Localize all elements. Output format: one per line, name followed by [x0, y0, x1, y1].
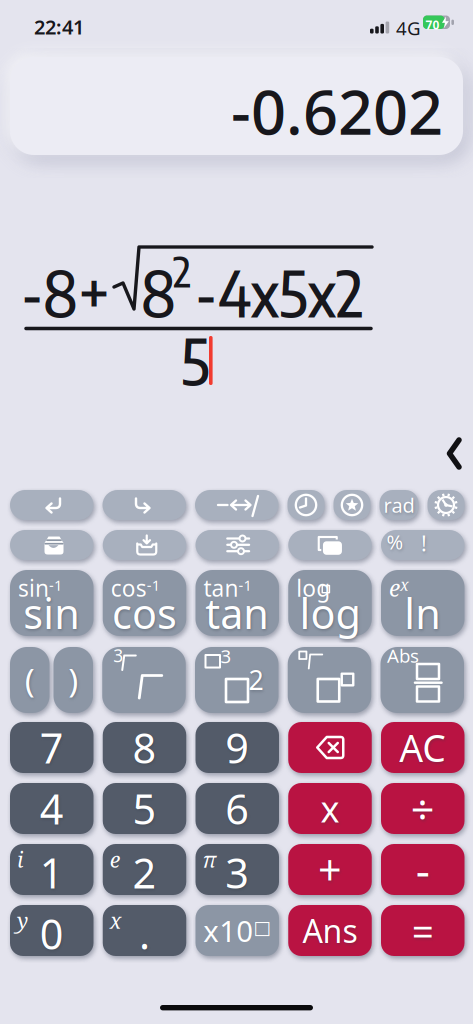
button[interactable]: ÷ [381, 783, 464, 834]
button[interactable] [288, 722, 372, 773]
button[interactable]: AC [381, 722, 464, 773]
staticText: + [318, 842, 342, 897]
staticText: x [320, 785, 339, 832]
staticText: 2 [173, 245, 191, 297]
staticText: = [412, 905, 434, 956]
staticText: 3 [113, 644, 123, 667]
staticText: y [17, 906, 28, 935]
button[interactable]: 2 [195, 647, 278, 713]
staticText: 7 [40, 720, 64, 775]
staticText: cos-1 [111, 573, 160, 603]
staticText: 1 [40, 845, 64, 900]
button[interactable] [195, 490, 278, 520]
button[interactable] [10, 57, 463, 155]
staticText: π [202, 845, 216, 874]
staticText: ) [68, 658, 78, 702]
staticText: Abs [387, 643, 419, 668]
staticText: 4G [396, 15, 421, 40]
button[interactable]: cos [103, 570, 186, 636]
button[interactable]: 1 [10, 844, 93, 895]
staticText: % [386, 528, 403, 555]
staticText: -4x5x2 [195, 253, 363, 331]
staticText: log [299, 586, 360, 640]
staticText: ln [404, 586, 441, 640]
button[interactable]: ) [53, 647, 93, 713]
staticText: - [416, 840, 430, 899]
staticText: 0 [40, 906, 64, 961]
button[interactable]: 2 [103, 844, 186, 895]
button[interactable] [10, 490, 93, 520]
staticText: . [139, 906, 150, 961]
button[interactable]: = [381, 905, 464, 956]
button[interactable]: % [381, 530, 464, 560]
button[interactable]: Ans [288, 905, 372, 956]
button[interactable]: sin [10, 570, 93, 636]
staticText: ex [389, 573, 409, 603]
staticText: log [296, 573, 330, 603]
button[interactable] [288, 647, 371, 713]
button[interactable]: 9 [195, 722, 279, 773]
staticText: x [110, 906, 122, 935]
staticText: 6 [225, 781, 249, 836]
staticText: 5 [181, 321, 210, 399]
button[interactable]: ln [381, 570, 464, 636]
button[interactable]: 7 [10, 722, 93, 773]
staticText: 2 [132, 845, 156, 900]
staticText: i [17, 845, 23, 874]
staticText: 3 [225, 845, 249, 900]
staticText: ÷ [411, 781, 435, 836]
staticText: ( [25, 658, 35, 702]
button[interactable]: + [288, 844, 372, 895]
button[interactable] [287, 490, 324, 520]
button[interactable]: 3 [102, 647, 186, 713]
staticText: 22:41 [34, 13, 84, 40]
button[interactable]: - [381, 844, 464, 895]
button[interactable] [103, 530, 186, 560]
button[interactable]: rad [379, 490, 418, 520]
button[interactable] [445, 437, 463, 470]
button[interactable]: tan [195, 570, 279, 636]
button[interactable] [288, 530, 372, 560]
staticText: 2 [248, 662, 263, 697]
button[interactable]: . [103, 905, 186, 956]
button[interactable]: x [288, 783, 372, 834]
staticText: cos [112, 586, 177, 640]
button[interactable]: 6 [195, 783, 279, 834]
button[interactable]: Abs [380, 647, 464, 713]
staticText: 70 [425, 17, 439, 33]
button[interactable]: log [288, 570, 372, 636]
staticText: rad [383, 492, 414, 518]
staticText: sin [23, 586, 80, 640]
staticText: 8 [141, 253, 176, 331]
button[interactable]: 4 [10, 783, 93, 834]
staticText: tan-1 [203, 573, 251, 603]
button[interactable]: 5 [103, 783, 186, 834]
button[interactable] [10, 530, 93, 560]
staticText: Ans [302, 909, 357, 952]
button[interactable]: 8 [103, 722, 186, 773]
staticText: 3 [220, 643, 231, 668]
staticText: 9 [225, 720, 249, 775]
staticText: -8+ [21, 253, 110, 331]
button[interactable] [427, 490, 464, 520]
staticText: ! [421, 529, 427, 557]
button[interactable]: 0 [10, 905, 93, 956]
staticText: 4 [40, 781, 64, 836]
staticText: 5 [132, 781, 156, 836]
staticText: tan [205, 586, 269, 640]
button[interactable] [195, 530, 279, 560]
button[interactable]: x10□ [195, 905, 279, 956]
staticText: sin-1 [18, 573, 62, 603]
button[interactable] [102, 490, 186, 520]
staticText: x10□ [203, 911, 271, 950]
staticText: e [110, 845, 121, 874]
button[interactable]: 3 [195, 844, 279, 895]
button[interactable]: ( [10, 647, 49, 713]
staticText: -0.6202 [231, 70, 443, 152]
button[interactable] [333, 490, 370, 520]
staticText: 8 [132, 720, 156, 775]
staticText: AC [399, 723, 446, 772]
